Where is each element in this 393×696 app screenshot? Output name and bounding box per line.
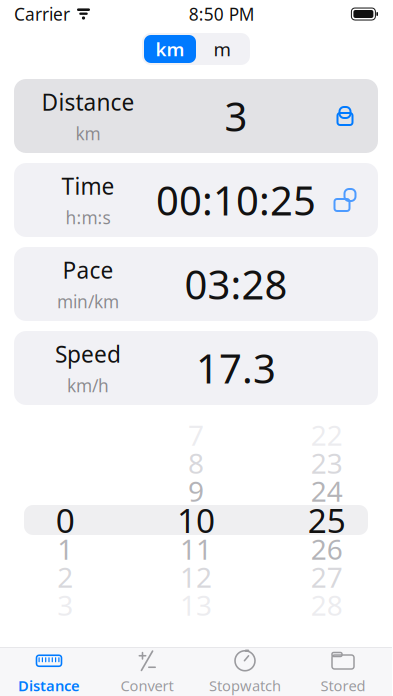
- button[interactable]: Distance: [0, 648, 98, 696]
- staticText: 03:28: [184, 257, 287, 310]
- staticText: 9: [188, 472, 204, 510]
- staticText: h:m:s: [65, 206, 110, 229]
- staticText: Distance: [18, 676, 80, 695]
- staticText: 3: [224, 89, 247, 142]
- staticText: Convert: [120, 676, 173, 695]
- button[interactable]: Convert: [98, 648, 196, 696]
- staticText: 27: [311, 558, 343, 596]
- staticText: Pace: [62, 255, 113, 285]
- staticText: 13: [180, 586, 212, 624]
- staticText: 24: [311, 472, 343, 510]
- staticText: 8: [188, 444, 204, 482]
- staticText: 2: [57, 558, 73, 596]
- staticText: 11: [180, 530, 212, 568]
- staticText: 1: [57, 530, 73, 568]
- staticText: 17.3: [196, 341, 276, 394]
- staticText: 00:10:25: [156, 173, 316, 226]
- staticText: 28: [311, 586, 343, 624]
- staticText: m: [213, 37, 230, 61]
- staticText: 3: [57, 586, 73, 624]
- staticText: 25: [308, 498, 346, 542]
- staticText: km/h: [67, 374, 109, 397]
- staticText: Distance: [41, 87, 134, 117]
- button[interactable]: Stopwatch: [196, 648, 294, 696]
- staticText: 0: [56, 498, 75, 542]
- staticText: 23: [311, 444, 343, 482]
- staticText: 7: [188, 416, 204, 454]
- staticText: km: [155, 37, 184, 61]
- staticText: Stopwatch: [209, 676, 281, 695]
- button[interactable]: Stored: [294, 648, 392, 696]
- button[interactable]: m: [196, 35, 248, 63]
- staticText: km: [75, 122, 100, 145]
- button[interactable]: km: [144, 35, 196, 63]
- staticText: 22: [311, 416, 343, 454]
- staticText: Time: [61, 171, 114, 201]
- staticText: min/km: [57, 290, 119, 313]
- staticText: 26: [311, 530, 343, 568]
- staticText: Carrier: [14, 2, 70, 25]
- staticText: [62, 472, 69, 510]
- staticText: Stored: [320, 676, 365, 695]
- staticText: Speed: [55, 339, 121, 369]
- button[interactable]: Speed: [14, 331, 378, 405]
- staticText: 12: [180, 558, 212, 596]
- staticText: 10: [177, 498, 215, 542]
- staticText: 8:50 PM: [189, 2, 255, 25]
- button[interactable]: Time: [14, 163, 378, 237]
- button[interactable]: Distance: [14, 79, 378, 153]
- button[interactable]: Pace: [14, 247, 378, 321]
